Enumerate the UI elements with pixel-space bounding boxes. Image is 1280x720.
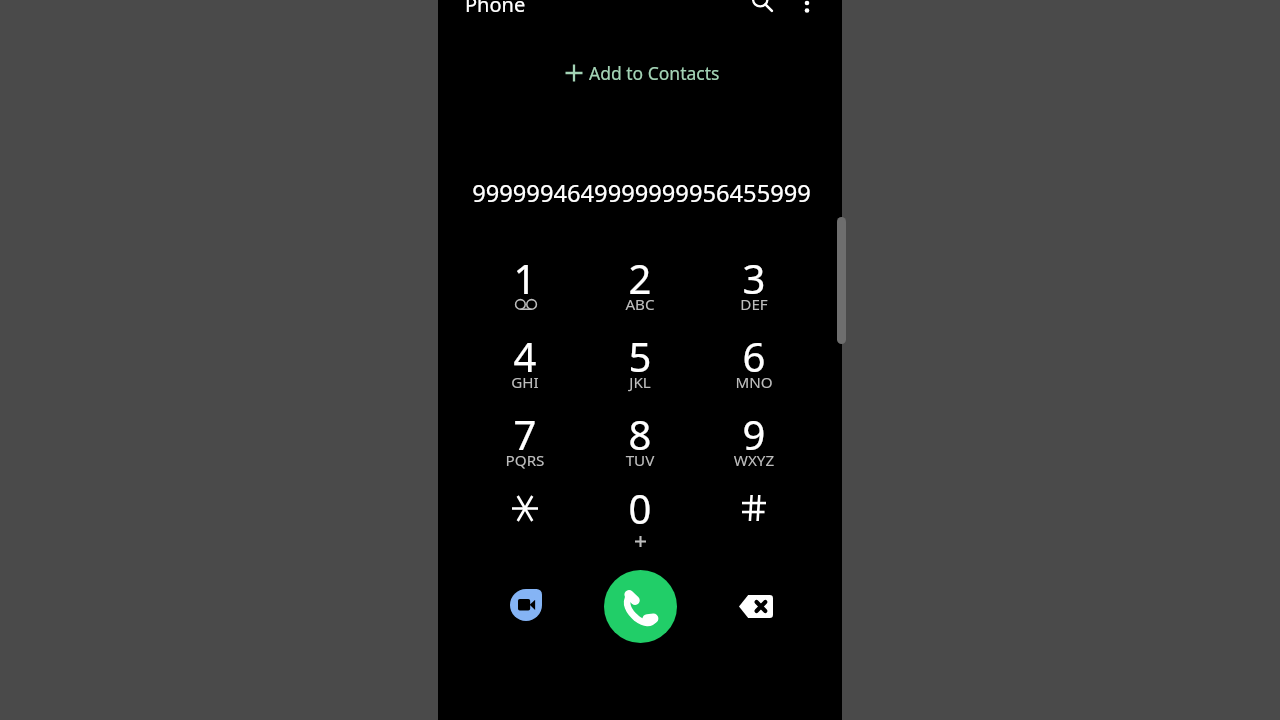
staticText: GHI	[487, 372, 563, 393]
button[interactable]: 4	[487, 324, 563, 394]
staticText: Add to Contacts	[589, 61, 720, 85]
staticText: Phone	[465, 0, 526, 18]
button[interactable]: Star	[487, 476, 563, 546]
button[interactable]: More options	[785, 0, 829, 25]
button[interactable]: 0	[602, 476, 678, 546]
staticText: MNO	[716, 372, 792, 393]
button[interactable]: 7	[487, 402, 563, 472]
button[interactable]: 8	[602, 402, 678, 472]
staticText: WXYZ	[716, 450, 792, 471]
button[interactable]: 1	[487, 246, 563, 316]
button[interactable]: 6	[716, 324, 792, 394]
button[interactable]: 5	[602, 324, 678, 394]
staticText: 7	[487, 407, 563, 461]
button[interactable]: 3	[716, 246, 792, 316]
staticText: 1	[487, 251, 563, 305]
staticText: DEF	[716, 294, 792, 315]
staticText: 8	[602, 407, 678, 461]
staticText: 4	[487, 329, 563, 383]
button[interactable]: Add to Contacts	[555, 57, 727, 89]
button[interactable]: 2	[602, 246, 678, 316]
staticText: 2	[602, 251, 678, 305]
staticText: ABC	[602, 294, 678, 315]
staticText: 5	[602, 329, 678, 383]
staticText: 3	[716, 251, 792, 305]
staticText: 0	[602, 481, 678, 535]
staticText: JKL	[602, 372, 678, 393]
staticText: 9	[716, 407, 792, 461]
button[interactable]: 9	[716, 402, 792, 472]
button[interactable]: Pound	[716, 476, 792, 546]
staticText: TUV	[602, 450, 678, 471]
staticText: 9999994649999999956455999	[472, 177, 811, 209]
button[interactable]: Backspace	[725, 575, 787, 637]
button[interactable]: Call	[604, 570, 677, 643]
button[interactable]: Video call	[495, 574, 557, 636]
staticText: 6	[716, 329, 792, 383]
staticText: PQRS	[487, 450, 563, 471]
button[interactable]: Search	[740, 0, 784, 23]
